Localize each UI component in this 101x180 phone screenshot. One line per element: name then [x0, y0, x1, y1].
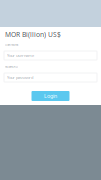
staticText: PASSWORD: [5, 65, 18, 68]
button[interactable]: Your password: [4, 73, 97, 82]
staticText: USERNAME: [5, 43, 18, 46]
staticText: MOR Bi(llion) US$: [5, 30, 61, 39]
button[interactable]: Your username: [4, 51, 97, 60]
staticText: Login: [44, 92, 57, 100]
button[interactable]: Login: [31, 91, 69, 101]
staticText: Your password: [7, 75, 33, 80]
staticText: Your username: [7, 53, 34, 58]
